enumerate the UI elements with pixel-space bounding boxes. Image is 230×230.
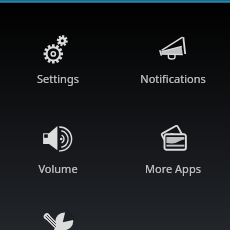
staticText: Settings bbox=[37, 71, 79, 86]
button[interactable]: More Apps bbox=[115, 93, 230, 183]
button[interactable]: Settings bbox=[0, 3, 115, 93]
button[interactable]: Volume bbox=[0, 93, 115, 183]
staticText: Volume bbox=[38, 161, 78, 176]
button[interactable]: Notifications bbox=[115, 3, 230, 93]
staticText: Notifications bbox=[140, 71, 206, 86]
staticText: More Apps bbox=[145, 161, 201, 176]
button[interactable]: Tools bbox=[0, 183, 115, 230]
